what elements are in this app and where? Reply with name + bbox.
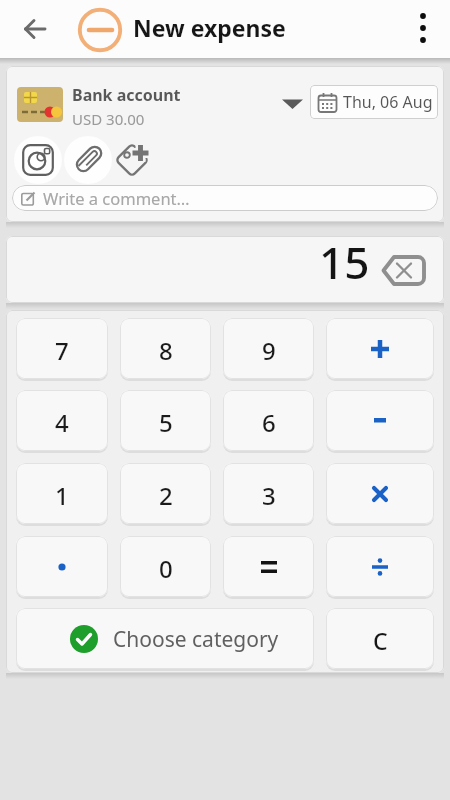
- button[interactable]: Write a comment…: [12, 185, 438, 211]
- staticText: 2: [159, 479, 173, 512]
- button[interactable]: [326, 463, 434, 524]
- button[interactable]: 2: [120, 463, 211, 524]
- staticText: 7: [55, 334, 69, 367]
- staticText: Choose category: [113, 625, 279, 654]
- staticText: 15: [319, 236, 370, 292]
- button[interactable]: [381, 254, 426, 287]
- button[interactable]: 9: [223, 318, 314, 379]
- button[interactable]: Thu, 06 Aug: [310, 85, 438, 119]
- staticText: 4: [55, 406, 69, 439]
- button[interactable]: [16, 536, 108, 597]
- staticText: 9: [262, 334, 276, 367]
- staticText: Thu, 06 Aug: [343, 91, 433, 113]
- staticText: New expense: [133, 12, 286, 43]
- button[interactable]: Choose category: [16, 608, 314, 669]
- staticText: 6: [262, 406, 276, 439]
- button[interactable]: [15, 9, 55, 49]
- button[interactable]: 3: [223, 463, 314, 524]
- button[interactable]: 8: [120, 318, 211, 379]
- staticText: C: [373, 625, 388, 656]
- button[interactable]: 7: [16, 318, 108, 379]
- staticText: 3: [262, 479, 276, 512]
- staticText: 0: [159, 552, 173, 585]
- button[interactable]: 6: [223, 390, 314, 451]
- button[interactable]: [14, 136, 62, 184]
- staticText: USD 30.00: [72, 109, 145, 129]
- button[interactable]: Bank account: [6, 76, 306, 132]
- staticText: 1: [55, 479, 69, 512]
- staticText: 8: [159, 334, 173, 367]
- staticText: Write a comment…: [43, 187, 190, 209]
- button[interactable]: 4: [16, 390, 108, 451]
- button[interactable]: [326, 318, 434, 379]
- button[interactable]: [223, 536, 314, 597]
- staticText: Bank account: [72, 84, 181, 106]
- button[interactable]: [326, 536, 434, 597]
- button[interactable]: C: [326, 608, 434, 669]
- button[interactable]: 5: [120, 390, 211, 451]
- button[interactable]: [64, 136, 112, 184]
- staticText: 5: [159, 406, 173, 439]
- button[interactable]: [117, 136, 165, 184]
- button[interactable]: [326, 390, 434, 451]
- button[interactable]: [404, 9, 442, 47]
- button[interactable]: 0: [120, 536, 211, 597]
- button[interactable]: 1: [16, 463, 108, 524]
